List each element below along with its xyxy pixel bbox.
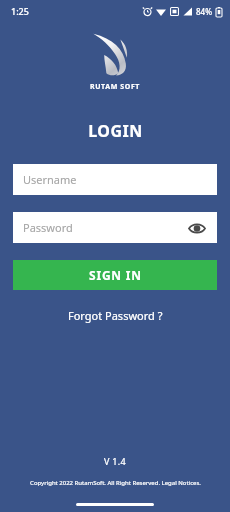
- staticText: 1:25: [11, 5, 29, 17]
- staticText: 84%: [196, 6, 212, 17]
- staticText: Forgot Password ?: [68, 308, 163, 323]
- button[interactable]: Show password: [187, 218, 207, 238]
- staticText: Password: [23, 220, 73, 235]
- staticText: SIGN IN: [89, 267, 142, 283]
- staticText: RUTAM SOFT: [90, 82, 140, 92]
- button[interactable]: Forgot Password ?: [56, 304, 175, 327]
- staticText: Username: [23, 172, 77, 187]
- button[interactable]: Username: [13, 164, 217, 195]
- staticText: LOGIN: [88, 120, 143, 142]
- staticText: Copyright 2022 RutamSoft. All Right Rese…: [30, 479, 201, 487]
- button[interactable]: Password: [13, 212, 217, 243]
- staticText: V 1.4: [104, 455, 126, 467]
- button[interactable]: SIGN IN: [13, 260, 217, 290]
